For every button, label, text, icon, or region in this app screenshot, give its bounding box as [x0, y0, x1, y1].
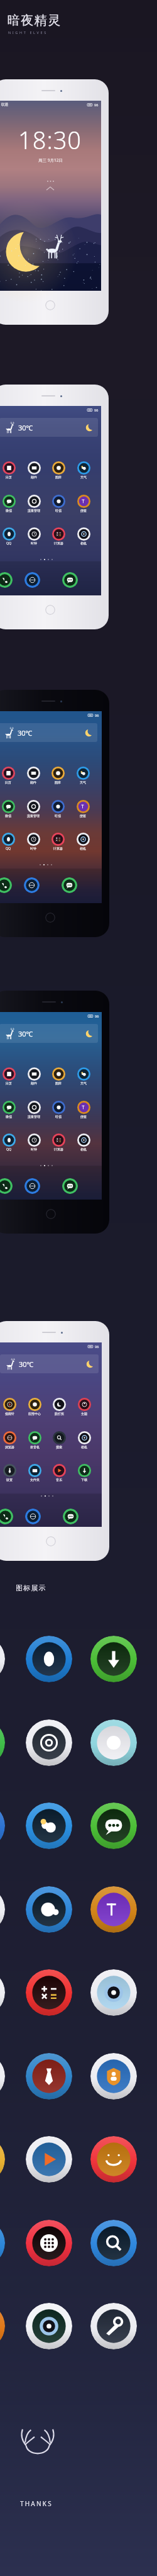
button[interactable]: Smile	[90, 2136, 137, 2183]
button[interactable]: 旺信	[46, 1101, 70, 1118]
button[interactable]: Dock app	[24, 1178, 40, 1194]
staticText: 30℃	[18, 728, 33, 738]
button[interactable]: 便签	[71, 800, 95, 818]
button[interactable]: 微信	[0, 495, 21, 512]
button[interactable]: 邮件	[21, 767, 45, 784]
button[interactable]: 邮件	[22, 461, 46, 479]
button[interactable]: Messages	[90, 1803, 137, 1849]
button[interactable]: Clock	[0, 1636, 5, 1682]
button[interactable]: 下载	[72, 1464, 96, 1482]
button[interactable]: 日历	[0, 1067, 21, 1085]
button[interactable]: Video	[26, 2136, 72, 2183]
button[interactable]: Maps	[0, 1803, 5, 1849]
button[interactable]: Recorder2	[26, 2220, 72, 2266]
button[interactable]: Notes2	[0, 2220, 5, 2266]
button[interactable]: Home	[45, 300, 55, 310]
button[interactable]: 旺信	[46, 800, 70, 818]
button[interactable]: Work	[26, 2053, 72, 2100]
button[interactable]: Security	[90, 2053, 137, 2100]
button[interactable]: Dock app	[24, 572, 40, 588]
button[interactable]: 主题	[72, 1398, 96, 1415]
button[interactable]: Camera	[26, 2303, 72, 2349]
button[interactable]: 计算器	[46, 1133, 70, 1151]
button[interactable]: Home	[45, 605, 55, 615]
button[interactable]: Mail	[26, 1719, 72, 1766]
button[interactable]: 日历	[0, 461, 21, 479]
button[interactable]: WeChat	[0, 1719, 5, 1766]
button[interactable]: 流量管理	[21, 800, 45, 818]
button[interactable]: Gallery	[0, 1886, 5, 1933]
button[interactable]: Recorder	[0, 2053, 5, 2100]
staticText: 相机	[80, 1147, 87, 1151]
button[interactable]: Weather widget	[0, 723, 97, 742]
button[interactable]: Weather widget	[0, 1354, 99, 1373]
button[interactable]: 旺信	[46, 495, 70, 512]
button[interactable]: 流量管理	[22, 1101, 46, 1118]
button[interactable]: 防打扰	[47, 1398, 71, 1415]
button[interactable]: Dock app	[62, 1178, 78, 1194]
button[interactable]: Dock app	[0, 1178, 13, 1194]
button[interactable]: 图库	[46, 461, 70, 479]
button[interactable]: 计算器	[46, 527, 70, 545]
button[interactable]: Weather widget	[0, 418, 98, 437]
button[interactable]: 应用中心	[23, 1398, 46, 1415]
button[interactable]: 流量管理	[22, 495, 46, 512]
button[interactable]: Dock app	[62, 572, 78, 588]
button[interactable]: Food	[90, 1719, 137, 1766]
button[interactable]: 微信	[0, 1101, 21, 1118]
button[interactable]: Browser	[0, 2303, 5, 2349]
staticText: 邮件	[30, 780, 36, 784]
button[interactable]: Search	[90, 2220, 137, 2266]
button[interactable]: 搜索	[47, 1431, 71, 1449]
button[interactable]: 天气	[71, 767, 95, 784]
button[interactable]: Calculator	[26, 1969, 72, 2016]
button[interactable]: 相机	[72, 1431, 96, 1449]
button[interactable]: Home	[46, 1209, 56, 1219]
button[interactable]: 日历	[0, 767, 20, 784]
button[interactable]: 时钟	[22, 527, 46, 545]
button[interactable]: Music	[0, 2136, 5, 2183]
button[interactable]: 便签	[72, 1101, 95, 1118]
button[interactable]: Notes	[90, 1886, 137, 1933]
button[interactable]: Dock app	[25, 1509, 41, 1524]
button[interactable]: 时钟	[22, 1133, 46, 1151]
button[interactable]: 图库	[46, 767, 70, 784]
button[interactable]: QQ	[0, 527, 21, 546]
button[interactable]: 指南针	[0, 1398, 21, 1415]
button[interactable]: Weather	[26, 1803, 72, 1849]
button[interactable]: 天气	[72, 461, 95, 479]
button[interactable]: Download	[90, 1636, 137, 1682]
button[interactable]: Dock app	[0, 877, 12, 893]
button[interactable]: 邮件	[22, 1067, 46, 1085]
button[interactable]: Dock app	[24, 877, 40, 893]
button[interactable]: Dock app	[0, 572, 13, 588]
button[interactable]: 录音机	[23, 1431, 46, 1449]
button[interactable]: QQ	[26, 1636, 72, 1682]
button[interactable]: Assistant	[26, 1886, 72, 1933]
button[interactable]: Home	[46, 1536, 56, 1546]
button[interactable]: 文件夹	[23, 1464, 46, 1482]
button[interactable]: Dock app	[62, 877, 77, 893]
button[interactable]: Home	[45, 913, 55, 923]
button[interactable]: QQ	[0, 833, 20, 851]
button[interactable]: 相机	[72, 1133, 95, 1151]
button[interactable]: Dock app	[0, 1509, 13, 1524]
button[interactable]: Tools	[90, 2303, 137, 2349]
button[interactable]: 时钟	[21, 833, 45, 850]
button[interactable]: 图库	[46, 1067, 70, 1085]
button[interactable]: 相机	[72, 527, 95, 545]
button[interactable]: 相机	[71, 833, 95, 850]
button[interactable]: 浏览器	[0, 1431, 21, 1449]
button[interactable]: 音乐	[47, 1464, 71, 1482]
button[interactable]: 设置	[0, 1464, 21, 1482]
button[interactable]: 微信	[0, 800, 20, 818]
button[interactable]: Dock app	[63, 1509, 78, 1524]
staticText: 时钟	[31, 541, 37, 545]
button[interactable]: QQ	[0, 1133, 21, 1152]
button[interactable]: Contacts	[0, 1969, 5, 2016]
button[interactable]: 计算器	[46, 833, 70, 850]
button[interactable]: 天气	[72, 1067, 95, 1085]
button[interactable]: Weather widget	[0, 1024, 98, 1043]
button[interactable]: Lens	[90, 1969, 137, 2016]
button[interactable]: 便签	[72, 495, 95, 512]
